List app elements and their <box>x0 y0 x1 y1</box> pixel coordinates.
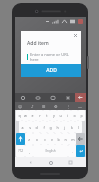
staticText: u <box>59 113 62 118</box>
button[interactable]: l <box>75 121 82 133</box>
staticText: a <box>21 125 24 130</box>
button[interactable]: Back <box>26 158 35 167</box>
button[interactable]: English <box>33 145 68 157</box>
button[interactable]: Hide keyboard <box>75 93 86 102</box>
button[interactable]: h <box>54 121 61 133</box>
staticText: x <box>36 137 38 142</box>
button[interactable]: Enter a name or URL here <box>27 52 75 61</box>
button[interactable]: b <box>55 133 62 145</box>
button[interactable]: Toolbar 1 <box>26 102 38 110</box>
staticText: d <box>35 125 38 130</box>
staticText: o <box>73 113 76 118</box>
button[interactable]: g <box>47 121 54 133</box>
button[interactable]: Toolbar 2 <box>38 102 50 110</box>
button[interactable]: k <box>68 121 75 133</box>
button[interactable]: u <box>57 110 64 121</box>
staticText: f <box>43 125 45 130</box>
button[interactable]: Shift <box>16 133 25 145</box>
staticText: — <box>78 104 82 109</box>
staticText: h <box>56 125 59 130</box>
button[interactable]: Settings <box>60 93 75 102</box>
staticText: s <box>29 125 31 130</box>
staticText: j <box>64 125 65 130</box>
staticText: l <box>78 125 79 130</box>
staticText: k <box>71 125 73 130</box>
button[interactable]: p <box>78 110 85 121</box>
staticText: z <box>28 137 30 142</box>
button[interactable]: v <box>48 133 55 145</box>
staticText: c <box>44 137 46 142</box>
staticText: q <box>18 113 21 118</box>
staticText: English <box>45 149 56 153</box>
button[interactable]: x <box>33 133 41 145</box>
button[interactable]: i <box>64 110 71 121</box>
staticText: ⋮ <box>66 104 70 109</box>
button[interactable]: Sticker <box>45 93 60 102</box>
staticText: e <box>31 113 34 118</box>
button[interactable]: , <box>25 145 33 157</box>
button[interactable]: d <box>33 121 40 133</box>
button[interactable]: Backspace <box>76 133 85 145</box>
button[interactable]: Home <box>46 158 55 167</box>
staticText: ♪ <box>31 104 34 109</box>
button[interactable]: e <box>29 110 36 121</box>
button[interactable]: Toolbar 5 <box>74 102 86 110</box>
button[interactable]: Emoji <box>15 93 30 102</box>
staticText: y <box>53 113 55 118</box>
button[interactable]: GIF <box>30 93 45 102</box>
staticText: ☺ <box>18 104 23 109</box>
button[interactable]: m <box>69 133 76 145</box>
staticText: ☰ <box>42 104 46 109</box>
staticText: , <box>29 149 30 154</box>
button[interactable]: j <box>61 121 68 133</box>
staticText: Enter a name or URL here <box>30 52 75 61</box>
button[interactable]: Toolbar 3 <box>50 102 62 110</box>
button[interactable]: y <box>50 110 57 121</box>
staticText: t <box>46 113 48 118</box>
button[interactable]: a <box>19 121 26 133</box>
staticText: i <box>67 113 68 118</box>
button[interactable]: f <box>40 121 47 133</box>
button[interactable]: ?12 <box>16 145 25 157</box>
button[interactable]: t <box>43 110 50 121</box>
staticText: g <box>49 125 52 130</box>
button[interactable]: Close <box>73 33 78 38</box>
button[interactable]: Recents <box>66 158 75 167</box>
button[interactable]: q <box>16 110 22 121</box>
staticText: p <box>80 113 83 118</box>
button[interactable]: w <box>22 110 29 121</box>
button[interactable]: z <box>25 133 33 145</box>
button[interactable]: o <box>71 110 78 121</box>
staticText: ADD <box>46 67 57 74</box>
staticText: ⚙ <box>54 104 58 109</box>
staticText: b <box>57 137 60 142</box>
staticText: ?12 <box>18 149 23 153</box>
staticText: n <box>64 137 67 142</box>
staticText: w <box>24 113 27 118</box>
button[interactable]: n <box>62 133 69 145</box>
staticText: m <box>71 137 75 142</box>
button[interactable]: r <box>36 110 43 121</box>
button[interactable]: Toolbar 0 <box>15 102 26 110</box>
button[interactable]: Enter <box>76 145 85 157</box>
button[interactable]: c <box>41 133 48 145</box>
button[interactable]: Toolbar 4 <box>62 102 74 110</box>
staticText: . <box>72 149 73 154</box>
staticText: r <box>39 113 41 118</box>
staticText: v <box>51 137 53 142</box>
button[interactable]: s <box>26 121 33 133</box>
button[interactable]: ADD <box>21 64 81 77</box>
staticText: Add item <box>27 40 49 47</box>
